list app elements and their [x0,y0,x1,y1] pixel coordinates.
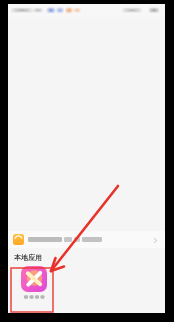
button[interactable] [15,266,53,300]
other: More [150,235,160,245]
button[interactable]: More [8,231,165,248]
staticText: 本地应用 [14,253,42,262]
